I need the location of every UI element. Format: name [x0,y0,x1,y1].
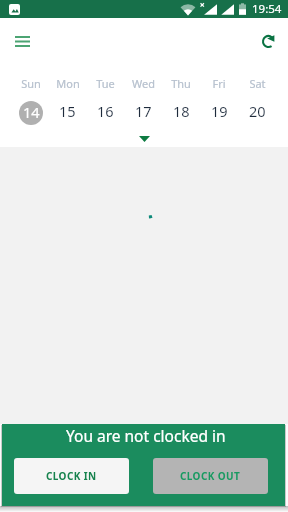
staticText: 20 [249,101,266,121]
staticText: 15 [59,101,76,121]
staticText: You are not clocked in [66,425,226,446]
staticText: Sun [21,76,41,91]
staticText: 17 [135,101,152,121]
staticText: CLOCK OUT [180,469,241,483]
staticText: Thu [171,76,191,91]
button[interactable]: CLOCK IN [14,458,129,494]
button[interactable]: 17 [124,99,162,127]
staticText: Mon [56,76,80,91]
staticText: Wed [132,76,155,91]
staticText: 14 [23,102,40,122]
button[interactable]: 19 [200,99,238,127]
button[interactable]: Refresh [252,24,286,58]
staticText: Fri [212,76,226,91]
staticText: 19 [211,101,228,121]
staticText: Sat [249,76,266,91]
staticText: 16 [97,101,114,121]
button[interactable]: 20 [238,99,276,127]
button[interactable]: Expand calendar [0,127,288,147]
button[interactable]: CLOCK OUT [153,458,268,494]
button[interactable]: 16 [86,99,124,127]
button[interactable]: 15 [49,99,86,127]
button[interactable]: 18 [162,99,200,127]
staticText: 18 [173,101,190,121]
staticText: 19:54 [252,1,282,17]
staticText: Tue [96,76,115,91]
button[interactable]: Menu [5,24,39,58]
staticText: CLOCK IN [46,469,97,483]
button[interactable]: 14 [12,99,49,127]
